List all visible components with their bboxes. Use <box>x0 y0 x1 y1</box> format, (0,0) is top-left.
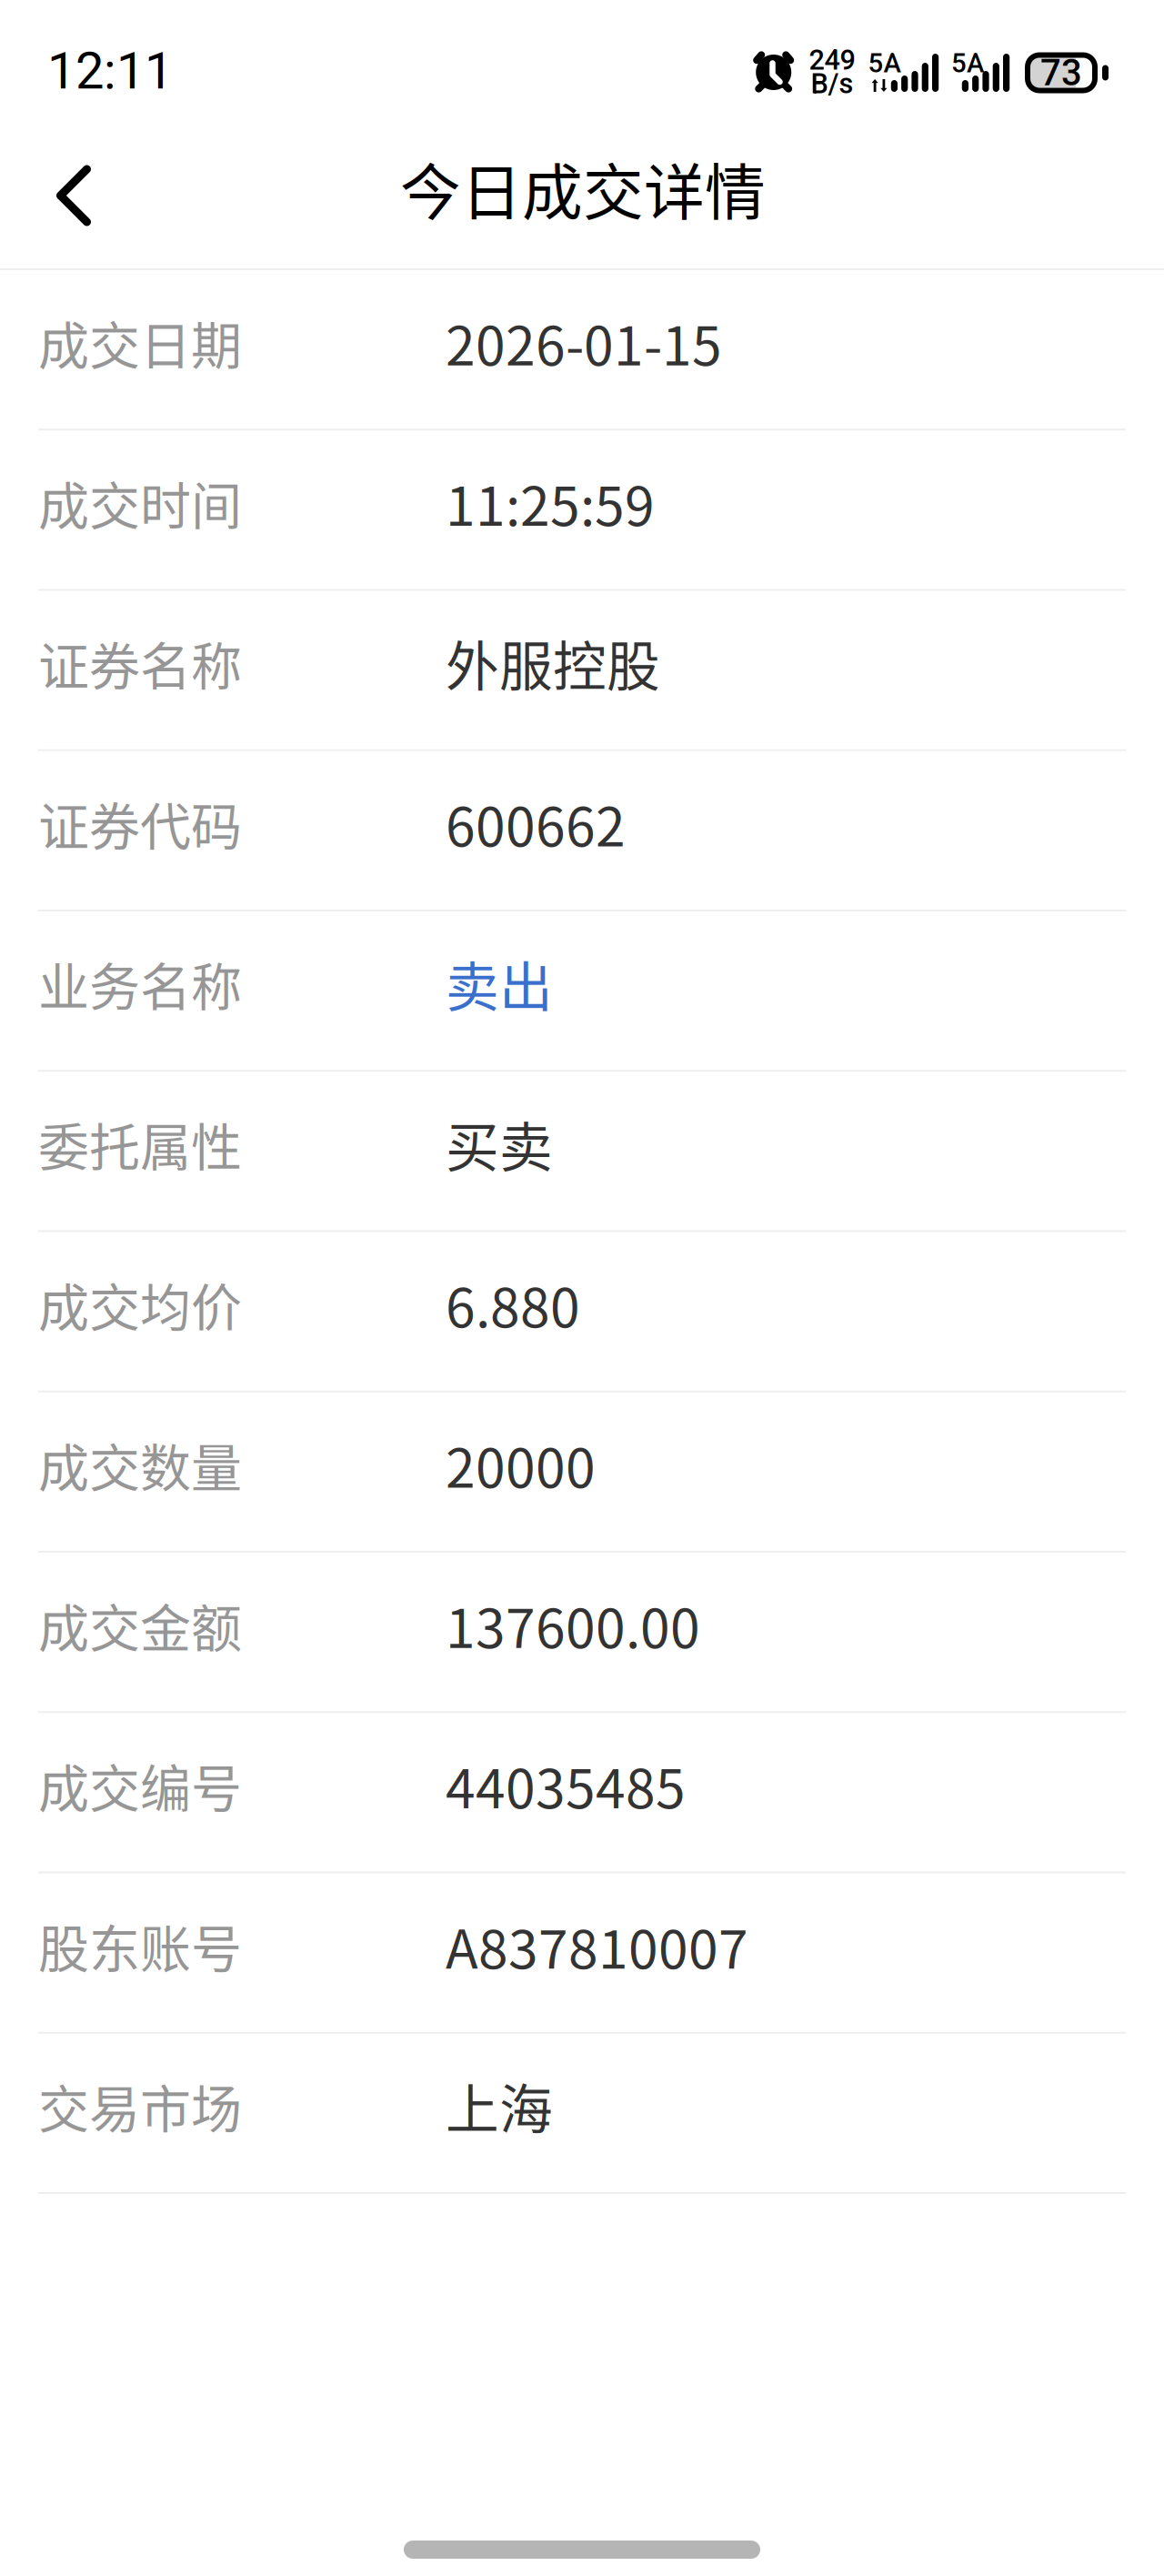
staticText: 5A <box>868 48 901 79</box>
staticText: 交易市场 <box>38 2069 242 2142</box>
staticText: 成交金额 <box>38 1588 242 1662</box>
staticText: 买卖 <box>446 1105 553 1182</box>
staticText: 上海 <box>446 2067 553 2144</box>
staticText: 6.880 <box>446 1265 580 1343</box>
staticText: 外服控股 <box>446 624 660 701</box>
staticText: B/s <box>811 67 853 100</box>
staticText: 证券名称 <box>38 626 242 700</box>
staticText: 12:11 <box>47 41 173 101</box>
staticText: 委托属性 <box>38 1107 242 1181</box>
staticText: 249 <box>809 44 855 76</box>
staticText: A837810007 <box>446 1907 748 1984</box>
staticText: 业务名称 <box>38 947 242 1020</box>
staticText: 600662 <box>446 784 626 862</box>
staticText: 股东账号 <box>38 1908 242 1982</box>
staticText: 卖出 <box>446 945 553 1022</box>
staticText: 44035485 <box>446 1746 686 1824</box>
staticText: 今日成交详情 <box>400 144 766 232</box>
staticText: 证券代码 <box>38 786 242 860</box>
staticText: 成交日期 <box>38 305 242 379</box>
button[interactable]: 返回 <box>17 130 130 262</box>
staticText: 20000 <box>446 1426 596 1503</box>
staticText: 137600.00 <box>446 1586 700 1663</box>
staticText: 成交均价 <box>38 1267 242 1341</box>
staticText: 73 <box>1040 51 1082 94</box>
staticText: 2026-01-15 <box>446 303 722 381</box>
staticText: 成交编号 <box>38 1748 242 1822</box>
staticText: 11:25:59 <box>446 464 655 541</box>
staticText: 5A <box>951 48 984 79</box>
staticText: 成交时间 <box>38 466 242 539</box>
staticText: 成交数量 <box>38 1427 242 1501</box>
